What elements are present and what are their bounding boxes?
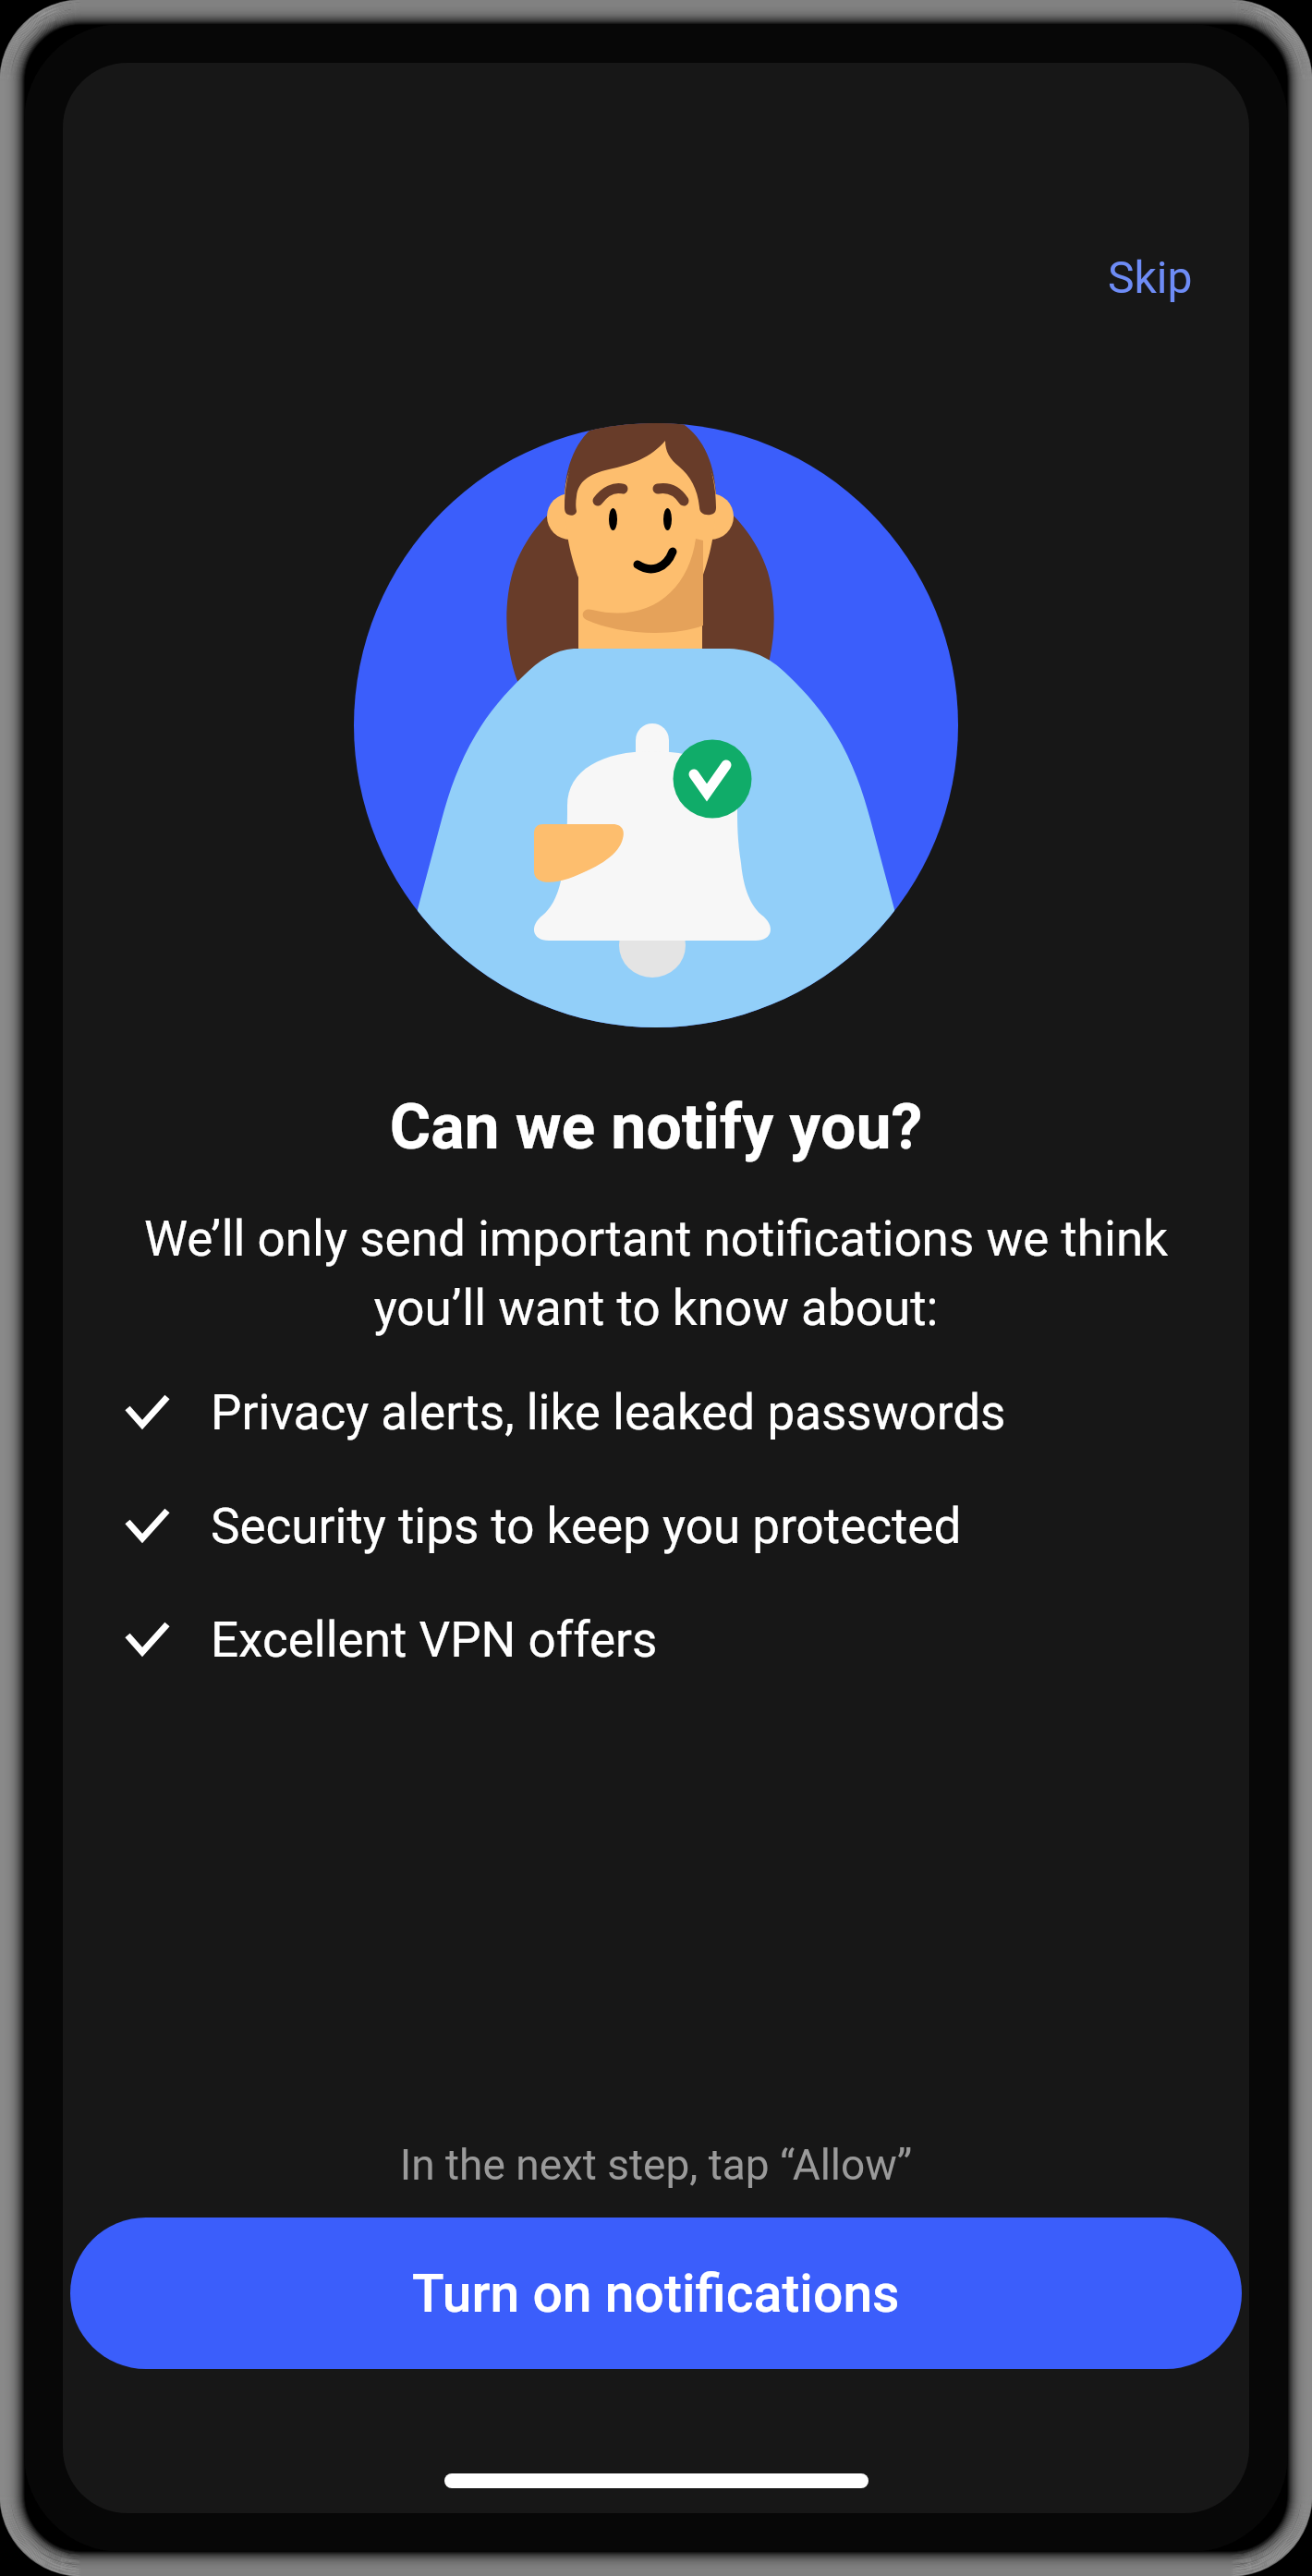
staticText: Skip (1108, 251, 1193, 303)
staticText: Privacy alerts, like leaked passwords (211, 1384, 1006, 1441)
staticText: In the next step, tap “Allow” (63, 2140, 1249, 2190)
staticText: Turn on notifications (412, 2263, 900, 2325)
button[interactable]: Turn on notifications (70, 2218, 1242, 2369)
staticText: Excellent VPN offers (211, 1611, 658, 1669)
staticText: Security tips to keep you protected (211, 1498, 962, 1555)
button[interactable]: Skip (1097, 242, 1204, 312)
staticText: We’ll only send important notifications … (87, 1210, 1225, 1337)
staticText: Can we notify you? (63, 1090, 1249, 1164)
